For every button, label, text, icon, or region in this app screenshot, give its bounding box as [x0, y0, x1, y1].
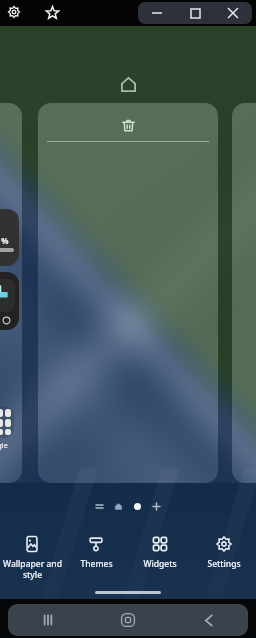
staticText: Widgets: [143, 558, 177, 570]
button[interactable]: Settings: [192, 533, 256, 573]
button[interactable]: Remove page: [117, 114, 139, 136]
staticText: Themes: [80, 558, 113, 570]
button[interactable]: Wallpaper and style: [0, 533, 64, 583]
staticText: 51%: [0, 235, 9, 246]
button[interactable]: Home: [88, 604, 168, 636]
button[interactable]: Current page: [131, 500, 144, 513]
button[interactable]: Home page: [112, 500, 125, 513]
button[interactable]: Minimise: [138, 2, 176, 24]
button[interactable]: Favourite: [43, 3, 61, 21]
button[interactable]: [0, 406, 14, 438]
button[interactable]: Widgets: [128, 533, 192, 573]
button[interactable]: All pages: [93, 500, 106, 513]
button[interactable]: Remove page: [38, 103, 218, 483]
button[interactable]: Recents: [8, 604, 88, 636]
button[interactable]: Themes: [64, 533, 128, 573]
button[interactable]: Maximise: [176, 2, 214, 24]
button[interactable]: 51%: [0, 103, 22, 483]
staticText: Wallpaper and style: [3, 558, 62, 580]
button[interactable]: 51%: [0, 209, 19, 266]
button[interactable]: [232, 103, 256, 483]
button[interactable]: Add page: [150, 500, 163, 513]
button[interactable]: Back: [168, 604, 248, 636]
button[interactable]: Close: [214, 2, 252, 24]
button[interactable]: Settings: [5, 3, 23, 21]
staticText: Settings: [207, 558, 241, 570]
staticText: Google: [0, 441, 8, 451]
button[interactable]: [0, 272, 19, 330]
